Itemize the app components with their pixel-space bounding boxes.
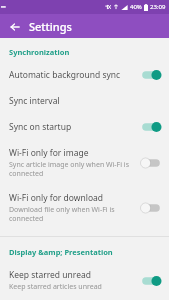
staticText: Settings bbox=[29, 19, 72, 34]
staticText: 23:09 bbox=[150, 3, 166, 11]
staticText: Automatic background sync bbox=[9, 69, 121, 81]
staticText: Sync on startup bbox=[9, 121, 72, 133]
button[interactable]: Toggle on bbox=[140, 275, 162, 287]
button[interactable]: Automatic background sync bbox=[0, 62, 169, 88]
button[interactable]: Toggle on bbox=[140, 121, 162, 133]
staticText: Download file only when Wi-Fi is connect… bbox=[9, 205, 134, 223]
button[interactable]: Wi-Fi only for image bbox=[0, 140, 169, 185]
staticText: Wi-Fi only for download bbox=[9, 192, 104, 204]
staticText: Display &amp; Presentation bbox=[9, 247, 169, 257]
staticText: Sync interval bbox=[9, 95, 60, 107]
button[interactable]: Back bbox=[5, 17, 24, 36]
button[interactable]: Toggle on bbox=[140, 69, 162, 81]
staticText: Keep starred unread bbox=[9, 269, 91, 281]
button[interactable]: Keep starred unread bbox=[0, 262, 169, 299]
staticText: Keep starred articles unread bbox=[9, 282, 102, 292]
button[interactable]: Sync interval bbox=[0, 88, 169, 114]
staticText: 40% bbox=[130, 3, 142, 11]
staticText: Sync article image only when Wi-Fi is co… bbox=[9, 160, 134, 178]
button[interactable]: Wi-Fi only for download bbox=[0, 185, 169, 230]
staticText: Synchronization bbox=[9, 47, 169, 57]
button[interactable]: Toggle off bbox=[140, 202, 162, 214]
button[interactable]: Toggle off bbox=[140, 157, 162, 169]
staticText: Wi-Fi only for image bbox=[9, 147, 89, 159]
button[interactable]: Sync on startup bbox=[0, 114, 169, 140]
